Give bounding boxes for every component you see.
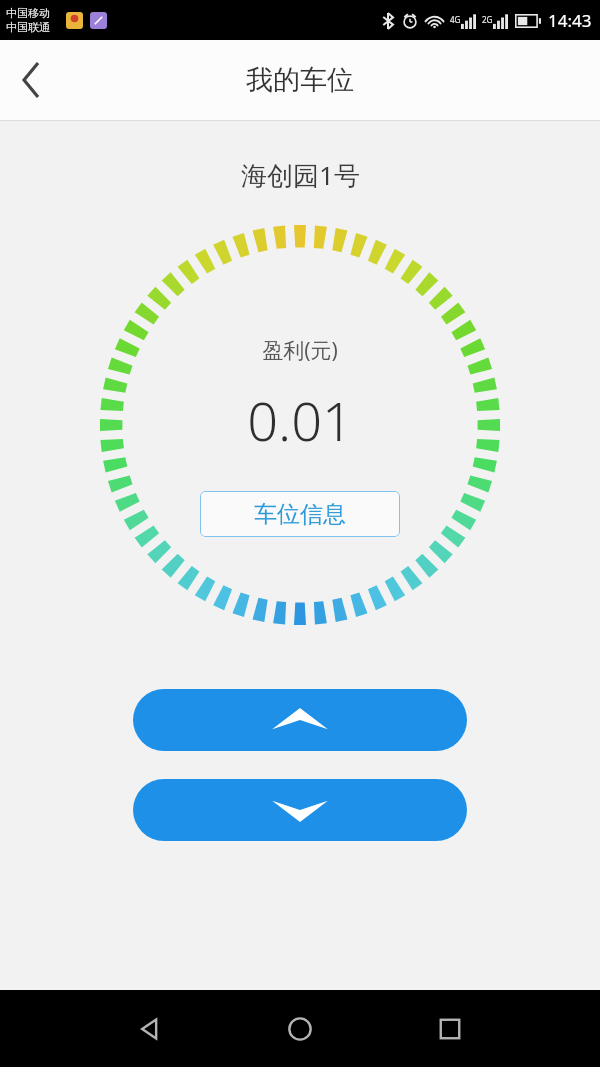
- staticText: 盈利(元): [262, 336, 338, 365]
- staticText: 2G: [482, 14, 493, 25]
- staticText: 中国移动: [6, 6, 50, 20]
- staticText: 14:43: [548, 9, 592, 32]
- button[interactable]: Back: [75, 990, 225, 1067]
- staticText: 4G: [450, 14, 461, 25]
- button[interactable]: Recents: [375, 990, 525, 1067]
- staticText: 车位信息: [254, 500, 346, 529]
- staticText: 我的车位: [246, 63, 354, 97]
- staticText: 0.01: [247, 383, 353, 457]
- button[interactable]: Back: [0, 48, 64, 112]
- button[interactable]: Home: [225, 990, 375, 1067]
- staticText: 中国联通: [6, 20, 50, 34]
- button[interactable]: Down: [133, 779, 467, 841]
- button[interactable]: 车位信息: [200, 491, 400, 537]
- staticText: 海创园1号: [241, 157, 360, 193]
- button[interactable]: Up: [133, 689, 467, 751]
